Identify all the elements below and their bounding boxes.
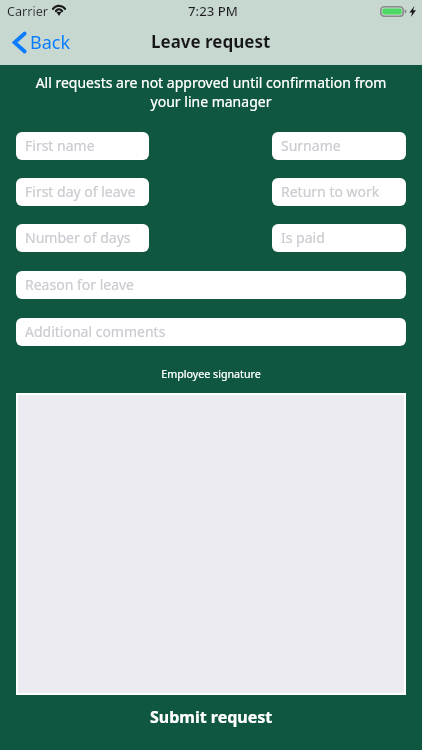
staticText: All requests are not approved until conf… xyxy=(33,73,389,111)
button[interactable]: Submit request xyxy=(0,698,422,736)
button[interactable]: Number of days xyxy=(16,224,149,252)
staticText: Reason for leave xyxy=(25,275,135,294)
staticText: Is paid xyxy=(281,228,325,247)
button[interactable]: First name xyxy=(16,132,149,160)
button[interactable]: Return to work xyxy=(272,178,406,206)
staticText: Submit request xyxy=(150,706,273,728)
button[interactable]: Surname xyxy=(272,132,406,160)
staticText: First day of leave xyxy=(25,182,136,201)
staticText: Surname xyxy=(281,136,341,155)
staticText: Leave request xyxy=(151,30,271,53)
staticText: Number of days xyxy=(25,228,131,247)
staticText: First name xyxy=(25,136,95,155)
staticText: Back xyxy=(30,30,71,55)
staticText: Carrier xyxy=(7,3,48,20)
button[interactable]: Employee signature pad xyxy=(16,393,406,695)
button[interactable]: First day of leave xyxy=(16,178,149,206)
button[interactable]: Is paid xyxy=(272,224,406,252)
staticText: 7:23 PM xyxy=(188,2,238,20)
staticText: Return to work xyxy=(281,182,380,201)
staticText: Employee signature xyxy=(0,367,422,382)
staticText: Additional comments xyxy=(25,322,166,341)
button[interactable]: Back xyxy=(0,26,81,59)
button[interactable]: Reason for leave xyxy=(16,271,406,299)
button[interactable]: Additional comments xyxy=(16,318,406,346)
